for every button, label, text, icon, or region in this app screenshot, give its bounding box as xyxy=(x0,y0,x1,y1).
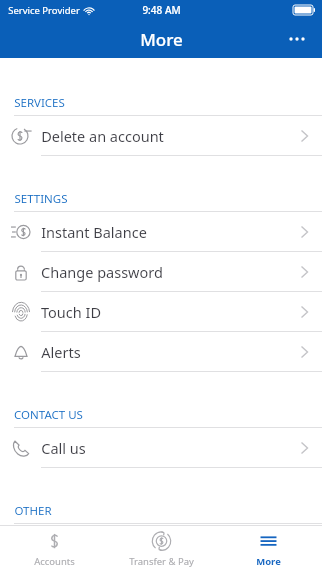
staticText: Touch ID xyxy=(41,302,101,322)
staticText: Instant Balance xyxy=(41,222,147,242)
staticText: CONTACT US xyxy=(14,407,83,423)
button[interactable]: Call us xyxy=(0,428,322,467)
button[interactable]: Touch ID xyxy=(0,292,322,331)
staticText: Alerts xyxy=(41,342,81,362)
button[interactable]: Change password xyxy=(0,252,322,291)
button[interactable]: More xyxy=(215,526,322,572)
staticText: SETTINGS xyxy=(14,191,68,207)
staticText: OTHER xyxy=(14,503,52,519)
button[interactable]: Delete an account xyxy=(0,116,322,155)
staticText: Accounts xyxy=(34,555,75,568)
button[interactable]: Alerts xyxy=(0,332,322,371)
button[interactable]: Accounts xyxy=(0,526,108,572)
staticText: Service Provider xyxy=(8,4,80,17)
staticText: Call us xyxy=(41,438,86,458)
button[interactable]: More options xyxy=(282,24,312,54)
button[interactable]: Instant Balance xyxy=(0,212,322,251)
staticText: Transfer & Pay xyxy=(129,555,194,568)
staticText: More xyxy=(140,28,183,51)
staticText: More xyxy=(256,555,281,568)
staticText: Delete an account xyxy=(41,126,164,146)
staticText: SERVICES xyxy=(14,95,65,111)
staticText: Change password xyxy=(41,262,163,282)
staticText: 9:48 AM xyxy=(142,3,181,17)
button[interactable]: Transfer & Pay xyxy=(108,526,215,572)
